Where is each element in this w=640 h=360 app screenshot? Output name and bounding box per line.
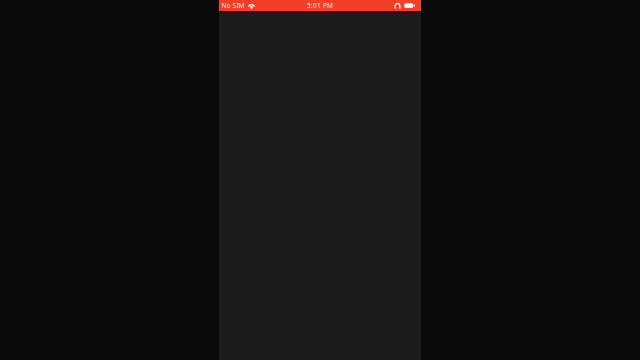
staticText: No SIM [221, 1, 244, 10]
staticText: 5:01 PM [307, 1, 333, 10]
